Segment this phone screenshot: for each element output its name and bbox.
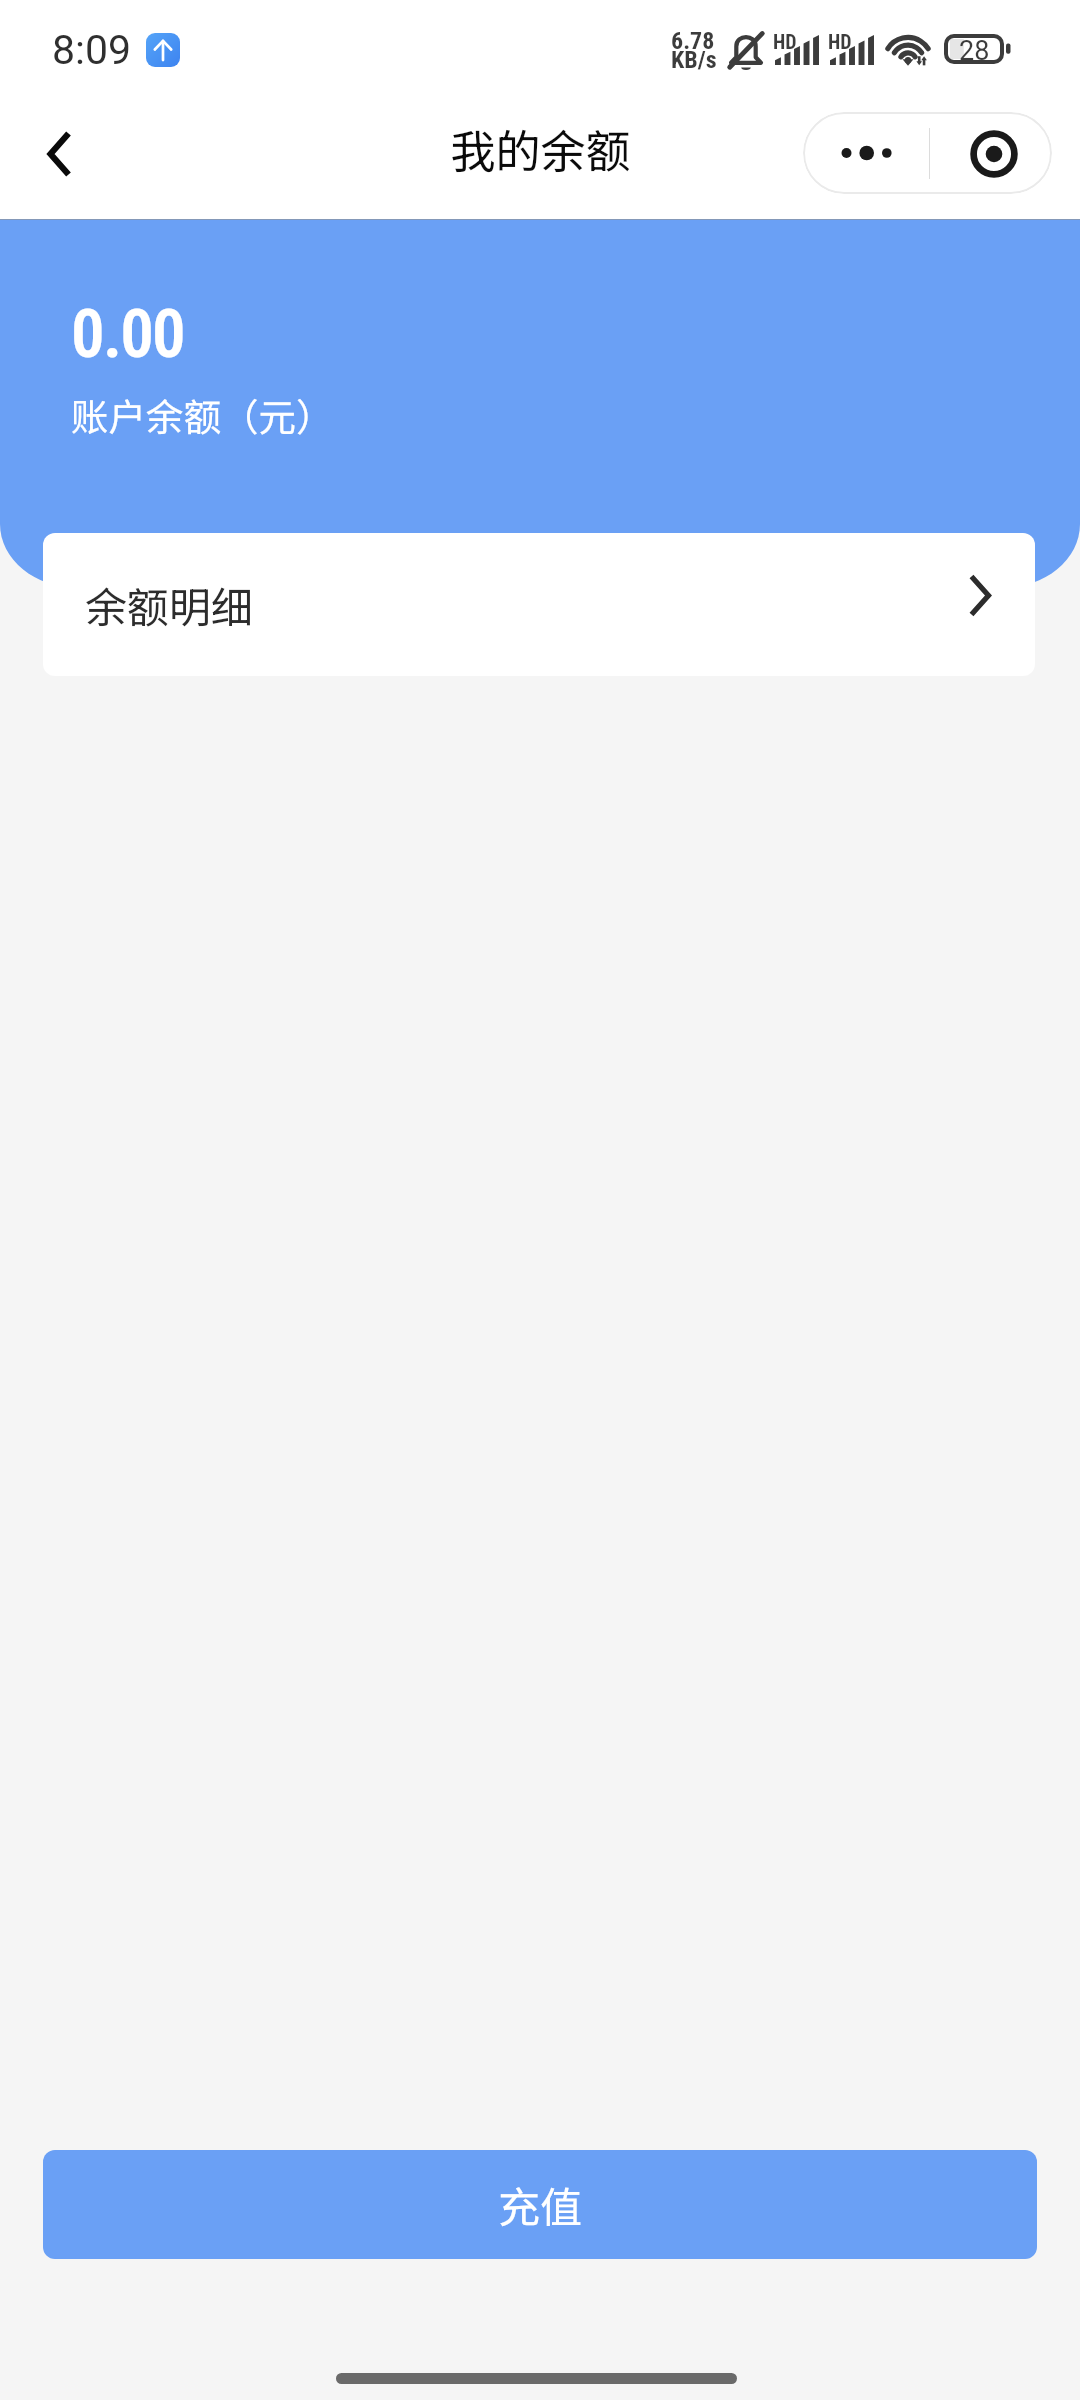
- staticText: 我的余额: [450, 116, 631, 181]
- staticText: HD: [773, 30, 797, 53]
- staticText: HD: [828, 30, 852, 53]
- staticText: KB/s: [671, 46, 717, 74]
- staticText: 8:09: [52, 26, 132, 74]
- staticText: 余额明细: [85, 574, 254, 635]
- staticText: 账户余额（元）: [71, 387, 334, 441]
- staticText: 6.78: [671, 27, 715, 55]
- staticText: 充值: [498, 2174, 583, 2235]
- button[interactable]: Back: [13, 110, 105, 219]
- button[interactable]: More options: [803, 112, 929, 194]
- staticText: 0.00: [71, 295, 184, 374]
- button[interactable]: Close mini program: [930, 112, 1052, 194]
- staticText: 28: [959, 35, 990, 67]
- button[interactable]: 余额明细: [43, 533, 1035, 676]
- button[interactable]: 充值: [43, 2150, 1037, 2259]
